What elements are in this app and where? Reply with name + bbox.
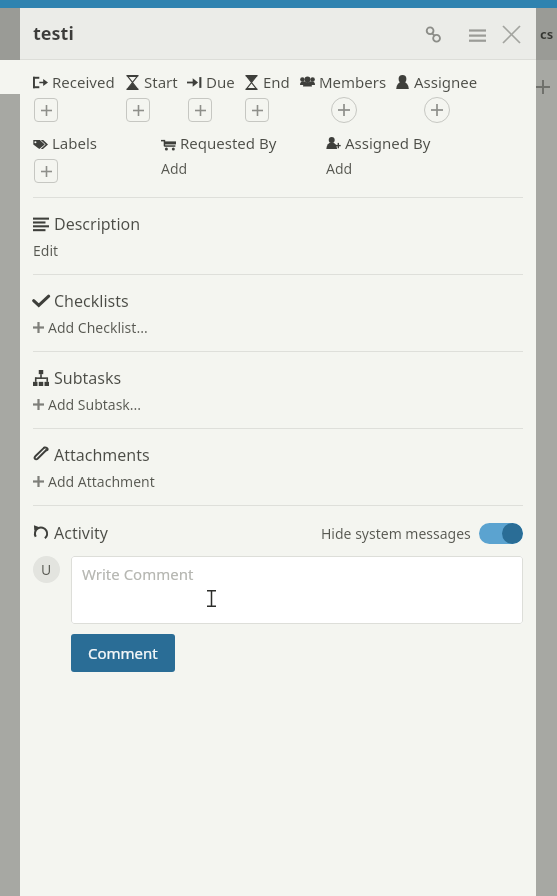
button[interactable]: Menu <box>460 17 494 51</box>
button[interactable]: Add label <box>34 159 58 183</box>
staticText: cs <box>540 25 554 43</box>
staticText: testi <box>33 21 74 46</box>
staticText: Add Subtask... <box>48 395 142 414</box>
button[interactable]: Add <box>326 159 353 178</box>
staticText: Comment <box>88 643 158 663</box>
button[interactable]: Edit <box>33 241 59 260</box>
staticText: Members <box>319 72 387 92</box>
button[interactable]: Add Subtask... <box>33 395 142 414</box>
button[interactable]: Add <box>161 159 188 178</box>
staticText: Hide system messages <box>321 524 471 543</box>
staticText: Due <box>206 72 235 92</box>
button[interactable]: Copy link <box>416 17 450 51</box>
staticText: Description <box>54 213 141 235</box>
button[interactable]: Close <box>494 17 528 51</box>
staticText: Edit <box>33 241 59 260</box>
staticText: Labels <box>52 133 98 153</box>
staticText: Checklists <box>54 290 129 312</box>
staticText: U <box>41 560 52 579</box>
button[interactable]: Hide system messages <box>321 523 523 544</box>
staticText: Add Attachment <box>48 472 155 491</box>
staticText: Write Comment <box>82 564 194 584</box>
button[interactable]: Write Comment <box>71 556 523 624</box>
button[interactable]: Comment <box>71 634 175 672</box>
button[interactable]: Add Received <box>34 98 58 122</box>
button[interactable]: Add Due <box>188 98 212 122</box>
staticText: Received <box>52 72 115 92</box>
button[interactable]: Add Checklist... <box>33 318 148 337</box>
button[interactable]: Add End <box>245 98 269 122</box>
staticText: Requested By <box>180 133 277 153</box>
staticText: Activity <box>54 522 109 544</box>
button[interactable]: Add Start <box>126 98 150 122</box>
staticText: Assigned By <box>345 133 431 153</box>
staticText: End <box>263 72 290 92</box>
staticText: Attachments <box>54 444 150 466</box>
staticText: Start <box>144 72 178 92</box>
staticText: Assignee <box>414 72 478 92</box>
staticText: Subtasks <box>54 367 122 389</box>
button[interactable]: Add Members <box>331 97 357 123</box>
button[interactable]: Add Assignee <box>424 97 450 123</box>
staticText: Add Checklist... <box>48 318 148 337</box>
button[interactable]: Add Attachment <box>33 472 155 491</box>
